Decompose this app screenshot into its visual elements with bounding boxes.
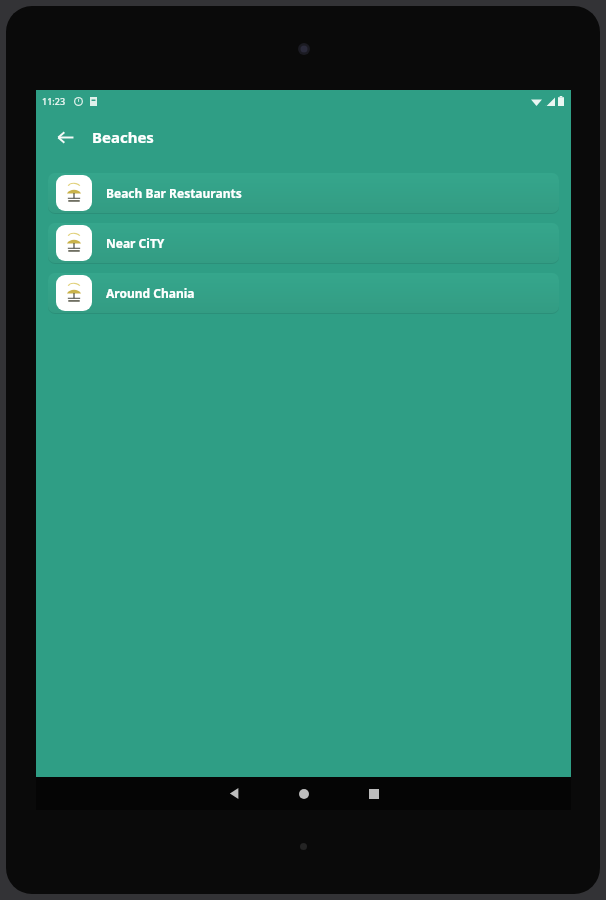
staticText: 11:23 (42, 95, 66, 107)
button[interactable]: Back (46, 118, 84, 156)
staticText: Near CiTY (106, 235, 165, 251)
button[interactable]: Home (269, 777, 339, 810)
staticText: Around Chania (106, 285, 195, 301)
button[interactable]: Recent apps (339, 777, 409, 810)
staticText: Beach Bar Restaurants (106, 185, 242, 201)
button[interactable]: Back (199, 777, 269, 810)
staticText: Beaches (92, 127, 154, 147)
button[interactable]: Near CiTY (48, 223, 559, 263)
button[interactable]: Around Chania (48, 273, 559, 313)
button[interactable]: Beach Bar Restaurants (48, 173, 559, 213)
